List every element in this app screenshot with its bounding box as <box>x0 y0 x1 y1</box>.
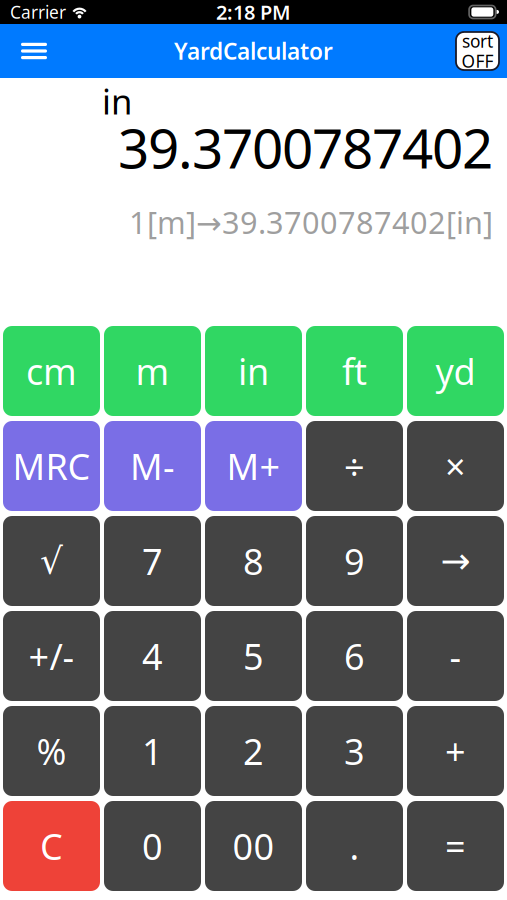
staticText: 9 <box>344 537 365 585</box>
staticText: YardCalculator <box>174 36 333 66</box>
button[interactable]: . <box>306 801 403 891</box>
staticText: = <box>445 822 466 870</box>
button[interactable]: MRC <box>3 421 100 511</box>
staticText: 39.3700787402 <box>118 111 493 184</box>
staticText: cm <box>26 347 77 395</box>
button[interactable]: in <box>205 326 302 416</box>
staticText: × <box>445 442 466 490</box>
button[interactable]: 1 <box>104 706 201 796</box>
button[interactable]: 9 <box>306 516 403 606</box>
button[interactable]: 4 <box>104 611 201 701</box>
staticText: in <box>238 347 269 395</box>
button[interactable]: 5 <box>205 611 302 701</box>
staticText: ft <box>342 347 367 395</box>
staticText: + <box>445 727 466 775</box>
staticText: in <box>102 78 132 124</box>
staticText: 2:18 PM <box>216 0 291 25</box>
button[interactable]: M+ <box>205 421 302 511</box>
staticText: √ <box>40 541 63 581</box>
button[interactable]: +/- <box>3 611 100 701</box>
button[interactable]: M- <box>104 421 201 511</box>
staticText: M- <box>130 442 175 490</box>
staticText: 6 <box>344 632 365 680</box>
button[interactable]: Toggle sort <box>456 32 507 70</box>
staticText: C <box>40 822 63 870</box>
staticText: 8 <box>243 537 264 585</box>
button[interactable]: 3 <box>306 706 403 796</box>
button[interactable]: 00 <box>205 801 302 891</box>
button[interactable]: 7 <box>104 516 201 606</box>
staticText: ÷ <box>344 442 365 490</box>
button[interactable]: + <box>407 706 504 796</box>
staticText: 2 <box>243 727 264 775</box>
staticText: . <box>349 822 359 870</box>
staticText: 7 <box>142 537 163 585</box>
staticText: yd <box>435 347 475 395</box>
staticText: 4 <box>142 632 163 680</box>
button[interactable]: √ <box>3 516 100 606</box>
staticText: Carrier <box>10 0 66 23</box>
button[interactable]: C <box>3 801 100 891</box>
button[interactable]: cm <box>3 326 100 416</box>
staticText: 5 <box>243 632 264 680</box>
staticText: 1[m]→39.3700787402[in] <box>129 202 493 242</box>
staticText: M+ <box>226 442 280 490</box>
button[interactable]: → <box>407 516 504 606</box>
button[interactable]: 6 <box>306 611 403 701</box>
button[interactable]: - <box>407 611 504 701</box>
staticText: - <box>449 632 461 680</box>
button[interactable]: % <box>3 706 100 796</box>
button[interactable]: m <box>104 326 201 416</box>
staticText: % <box>36 727 66 775</box>
staticText: → <box>440 541 470 581</box>
button[interactable]: × <box>407 421 504 511</box>
staticText: MRC <box>12 442 90 490</box>
staticText: OFF <box>461 49 493 72</box>
staticText: 00 <box>232 822 274 870</box>
staticText: m <box>135 347 169 395</box>
staticText: +/- <box>28 632 74 680</box>
button[interactable]: Menu <box>0 43 47 59</box>
button[interactable]: = <box>407 801 504 891</box>
staticText: 0 <box>142 822 163 870</box>
button[interactable]: 8 <box>205 516 302 606</box>
button[interactable]: 0 <box>104 801 201 891</box>
staticText: 1 <box>142 727 163 775</box>
button[interactable]: 2 <box>205 706 302 796</box>
staticText: sort <box>462 29 493 52</box>
button[interactable]: ft <box>306 326 403 416</box>
button[interactable]: yd <box>407 326 504 416</box>
button[interactable]: ÷ <box>306 421 403 511</box>
staticText: 3 <box>344 727 365 775</box>
